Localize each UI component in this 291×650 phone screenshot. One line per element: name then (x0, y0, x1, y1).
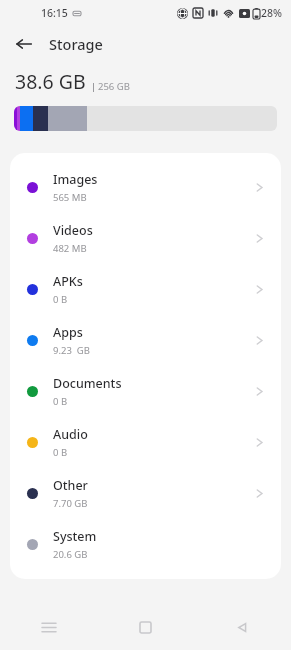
staticText: APKs (53, 273, 83, 290)
button[interactable]: Audio (10, 417, 281, 468)
button[interactable]: Back (194, 604, 291, 650)
staticText: 20.6 GB (53, 548, 88, 561)
staticText: Videos (53, 222, 93, 239)
staticText: System (53, 528, 97, 545)
button[interactable]: APKs (10, 264, 281, 315)
staticText: 9.23 GB (53, 344, 90, 357)
staticText: Apps (53, 324, 83, 341)
staticText: 16:15 (41, 6, 68, 20)
staticText: 565 MB (53, 191, 87, 204)
staticText: 0 B (53, 446, 68, 459)
staticText: 28% (261, 6, 282, 20)
button[interactable]: Videos (10, 213, 281, 264)
staticText: Storage (49, 34, 103, 54)
staticText: 0 B (53, 293, 68, 306)
staticText: 38.6 GB (15, 68, 86, 95)
staticText: Images (53, 171, 98, 188)
button[interactable]: Images (10, 162, 281, 213)
button[interactable]: Recent apps (0, 604, 97, 650)
staticText: Audio (53, 426, 88, 443)
button[interactable]: Home (97, 604, 194, 650)
staticText: 0 B (53, 395, 68, 408)
button[interactable]: Documents (10, 366, 281, 417)
button[interactable]: Apps (10, 315, 281, 366)
staticText: 7.70 GB (53, 497, 88, 510)
staticText: 256 GB (98, 80, 130, 93)
button[interactable]: System (10, 519, 281, 570)
staticText: Other (53, 477, 88, 494)
staticText: 482 MB (53, 242, 87, 255)
staticText: Documents (53, 375, 122, 392)
button[interactable]: Other (10, 468, 281, 519)
button[interactable]: Back (8, 28, 40, 60)
